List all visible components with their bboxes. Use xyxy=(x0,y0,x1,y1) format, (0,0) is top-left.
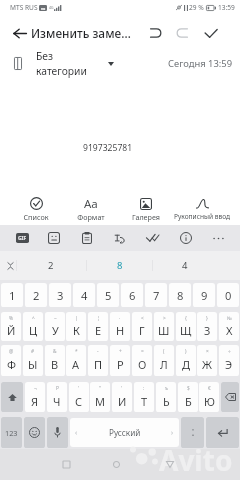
button[interactable]: 8 xyxy=(90,251,150,280)
button[interactable]: 0 xyxy=(217,283,239,307)
button[interactable]: Undo xyxy=(142,18,168,48)
staticText: В xyxy=(51,357,59,372)
button[interactable]: ¦ xyxy=(88,312,108,341)
staticText: Л xyxy=(160,357,168,372)
staticText: 9 xyxy=(201,288,208,303)
button[interactable]: < xyxy=(132,312,152,341)
button[interactable]: ( xyxy=(154,345,174,376)
staticText: К xyxy=(73,323,80,338)
button[interactable]: Без xyxy=(14,49,114,78)
button[interactable]: Punctuation xyxy=(181,417,204,448)
button[interactable]: Backspace xyxy=(221,382,239,412)
button[interactable]: Р xyxy=(47,382,67,412)
staticText: & xyxy=(53,348,57,355)
button[interactable]: GIF xyxy=(9,225,35,251)
staticText: } xyxy=(206,315,208,322)
staticText: Х xyxy=(226,323,233,338)
button[interactable]: $ xyxy=(178,382,198,412)
staticText: Щ xyxy=(180,323,192,338)
button[interactable]: * xyxy=(66,345,86,376)
button[interactable]: { xyxy=(176,312,196,341)
button[interactable]: ÷ xyxy=(219,345,239,376)
button[interactable]: : xyxy=(134,382,154,412)
staticText: П xyxy=(94,357,103,372)
staticText: А xyxy=(72,357,80,372)
button[interactable]: 8 xyxy=(169,283,191,307)
button[interactable]: 5 xyxy=(97,283,119,307)
button[interactable]: 1 xyxy=(1,283,23,307)
button[interactable]: Info xyxy=(173,225,199,251)
button[interactable]: + xyxy=(110,345,130,376)
button[interactable]: - xyxy=(88,345,108,376)
button[interactable]: 4 xyxy=(155,251,215,280)
button[interactable]: Back xyxy=(6,18,34,48)
button[interactable]: ' xyxy=(112,382,132,412)
button[interactable]: 2 xyxy=(25,283,47,307)
staticText: @ xyxy=(9,348,14,355)
staticText: 8 xyxy=(177,288,184,303)
button[interactable]: ¬ xyxy=(25,382,45,412)
button[interactable]: Recent apps xyxy=(100,449,132,480)
button[interactable]: 7 xyxy=(145,283,167,307)
staticText: № xyxy=(227,315,232,322)
button[interactable]: ъ xyxy=(156,382,176,412)
button[interactable]: Translate xyxy=(107,225,133,251)
button[interactable]: " xyxy=(90,382,110,412)
staticText: Список xyxy=(10,212,62,222)
button[interactable]: 9 xyxy=(193,283,215,307)
button[interactable]: ^ xyxy=(23,312,43,341)
staticText: 3 xyxy=(57,288,64,303)
button[interactable]: Stickers xyxy=(41,225,67,251)
button[interactable]: Back xyxy=(154,449,186,480)
staticText: ‹ xyxy=(75,428,78,438)
button[interactable]: } xyxy=(197,312,217,341)
button[interactable]: | xyxy=(66,312,86,341)
button[interactable]: 6 xyxy=(121,283,143,307)
button[interactable]: = xyxy=(132,345,152,376)
button[interactable]: Aa xyxy=(65,192,117,240)
staticText: Т xyxy=(141,394,148,409)
button[interactable]: 3 xyxy=(49,283,71,307)
button[interactable]: Clipboard xyxy=(74,225,100,251)
button[interactable]: > xyxy=(154,312,174,341)
button[interactable]: 4 xyxy=(73,283,95,307)
button[interactable]: More options xyxy=(205,225,231,251)
staticText: · xyxy=(119,315,121,322)
button[interactable]: 2 xyxy=(21,251,81,280)
button[interactable]: Numbers xyxy=(1,417,22,448)
button[interactable]: Home xyxy=(50,449,82,480)
button[interactable]: € xyxy=(199,382,219,412)
button[interactable]: @ xyxy=(1,345,21,376)
button[interactable]: · xyxy=(110,312,130,341)
button[interactable]: # xyxy=(23,345,43,376)
button[interactable]: Save note xyxy=(198,18,224,48)
button[interactable]: Redo xyxy=(169,18,195,48)
staticText: Ф xyxy=(7,357,16,372)
button[interactable]: № xyxy=(219,312,239,341)
button[interactable]: Enter xyxy=(206,417,239,448)
staticText: Aa xyxy=(84,196,98,211)
staticText: Н xyxy=(116,323,125,338)
button[interactable]: ) xyxy=(176,345,196,376)
button[interactable]: % xyxy=(1,312,21,341)
button[interactable]: Галерея xyxy=(120,192,172,240)
button[interactable]: Spell check xyxy=(139,225,165,251)
button[interactable]: Expand suggestions xyxy=(0,251,20,280)
button[interactable]: × xyxy=(197,345,217,376)
button[interactable]: ~ xyxy=(45,312,65,341)
button[interactable]: Emoji xyxy=(24,417,45,448)
staticText: × xyxy=(206,348,209,355)
button[interactable]: Voice input xyxy=(47,417,68,448)
staticText: › xyxy=(171,428,174,438)
staticText: 9197325781 xyxy=(83,142,133,154)
button[interactable]: Shift xyxy=(1,382,23,412)
button[interactable]: Список xyxy=(10,192,62,240)
button[interactable]: ' xyxy=(69,382,89,412)
staticText: Я xyxy=(31,394,39,409)
button[interactable]: Русский xyxy=(70,418,179,447)
button[interactable]: Рукописный ввод xyxy=(173,192,231,240)
staticText: % xyxy=(9,315,13,322)
button[interactable]: & xyxy=(45,345,65,376)
staticText: О xyxy=(138,357,147,372)
staticText: ) xyxy=(185,348,187,355)
